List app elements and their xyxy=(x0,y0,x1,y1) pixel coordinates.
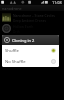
button[interactable]: No Shuffle xyxy=(2,56,59,67)
staticText: 11:08 xyxy=(52,0,62,5)
staticText: Cloning in 2 xyxy=(12,38,35,43)
staticText: No Shuffle xyxy=(5,59,26,65)
staticText: Shuffle xyxy=(5,48,19,54)
staticText: Deep Ambient Drones xyxy=(13,19,47,23)
button[interactable]: Shuffle xyxy=(2,45,59,56)
staticText: Hollow Earth xyxy=(13,24,34,29)
staticText: nanodrone xyxy=(2,6,22,11)
button[interactable]: Hollow Earth xyxy=(0,23,64,34)
staticText: Nanodrone – Stone Circles xyxy=(13,13,55,18)
button[interactable]: Nanodrone – Stone Circles xyxy=(0,12,64,23)
